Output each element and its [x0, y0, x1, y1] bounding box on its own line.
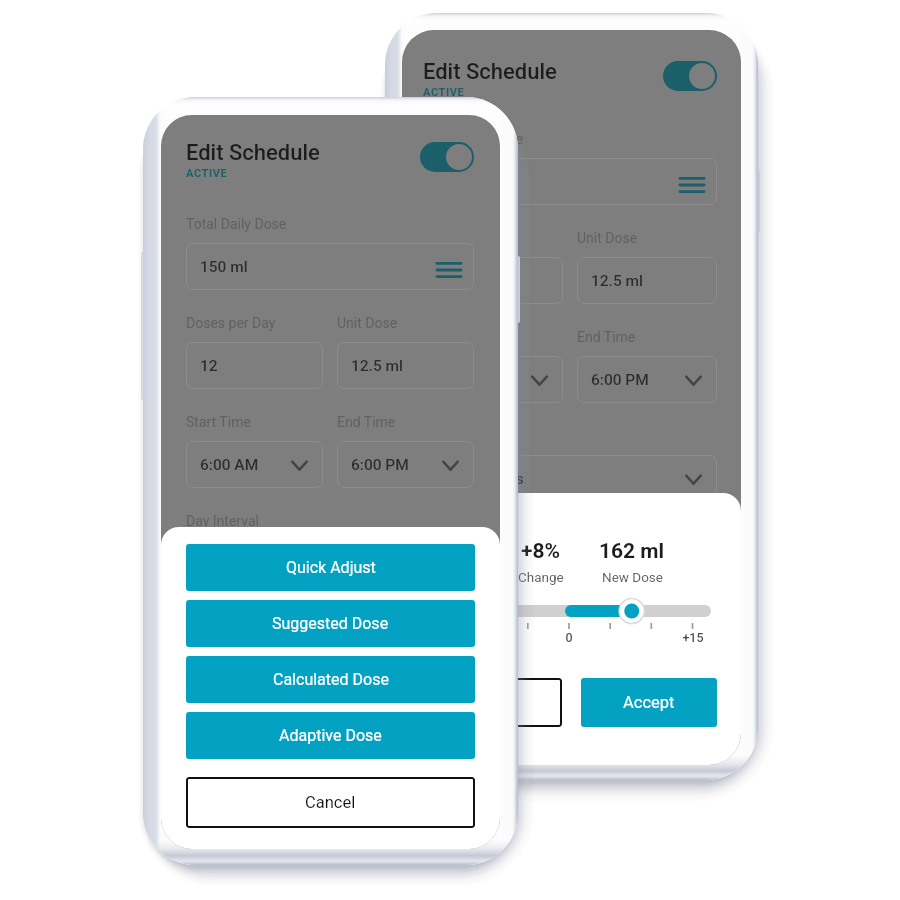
staticText: Accept	[623, 693, 675, 712]
staticText: Every 2 days	[437, 470, 524, 488]
button[interactable]: Every 2 days	[186, 540, 474, 587]
staticText: 150 ml	[200, 258, 248, 276]
staticText: Day Interval	[186, 513, 259, 529]
staticText: Start Time	[186, 414, 251, 430]
button[interactable]: Schedule active toggle	[663, 61, 717, 91]
staticText: 162 ml	[599, 539, 665, 564]
button[interactable]: 150 ml	[186, 243, 474, 290]
staticText: ACTIVE	[186, 167, 228, 180]
staticText: Edit Schedule	[186, 140, 320, 166]
staticText: Doses per Day	[186, 315, 276, 331]
staticText: 12	[437, 272, 455, 290]
button[interactable]: 6:00 PM	[577, 356, 717, 403]
staticText: End Time	[577, 329, 636, 345]
staticText: Adaptive Dose	[279, 726, 382, 745]
button[interactable]: Cancel	[186, 777, 475, 828]
staticText: 150 ml	[417, 539, 483, 564]
staticText: End Time	[337, 414, 396, 430]
staticText: Suggested Dose	[272, 614, 389, 633]
staticText: 0	[549, 630, 589, 645]
button[interactable]: Schedule active toggle	[420, 142, 474, 172]
button[interactable]: 12.5 ml	[337, 342, 474, 389]
staticText: Quick Adjust	[286, 558, 376, 577]
button[interactable]: Suggested Dose	[186, 600, 475, 647]
staticText: Edit Schedule	[423, 59, 557, 85]
button[interactable]: 6:00 AM	[423, 356, 563, 403]
button[interactable]: 6:00 AM	[186, 441, 323, 488]
button[interactable]: 6:00 PM	[337, 441, 474, 488]
staticText: Cancel	[469, 693, 520, 712]
staticText: Doses per Day	[423, 230, 513, 246]
staticText: +15	[673, 630, 713, 645]
staticText: Every 2 days	[200, 555, 287, 573]
button[interactable]: Adaptive Dose	[186, 712, 475, 759]
button[interactable]: Dose adjustment slider	[427, 601, 711, 647]
staticText: Change	[518, 569, 564, 585]
staticText: ACTIVE	[423, 86, 465, 99]
button[interactable]: Calculated Dose	[186, 656, 475, 703]
button[interactable]: 12	[186, 342, 323, 389]
staticText: 12.5 ml	[351, 357, 404, 375]
staticText: Unit Dose	[577, 230, 638, 246]
staticText: Unit Dose	[337, 315, 398, 331]
button[interactable]: Cancel	[426, 678, 562, 727]
button[interactable]: Quick Adjust	[186, 544, 475, 591]
staticText: Calculated Dose	[273, 670, 389, 689]
staticText: 6:00 PM	[591, 371, 649, 389]
button[interactable]: 12	[423, 257, 563, 304]
button[interactable]: 12.5 ml	[577, 257, 717, 304]
staticText: 12	[200, 357, 218, 375]
staticText: Total Daily Dose	[186, 216, 287, 232]
button[interactable]: Accept	[581, 678, 717, 727]
staticText: Total Daily Dose	[423, 131, 524, 147]
staticText: New Dose	[602, 569, 663, 585]
button[interactable]: Every 2 days	[423, 455, 717, 502]
staticText: 12.5 ml	[591, 272, 644, 290]
staticText: 6:00 AM	[200, 456, 259, 474]
staticText: 6:00 PM	[351, 456, 409, 474]
staticText: +8%	[521, 539, 561, 564]
staticText: Cancel	[305, 793, 356, 812]
button[interactable]: 150 ml	[423, 158, 717, 205]
